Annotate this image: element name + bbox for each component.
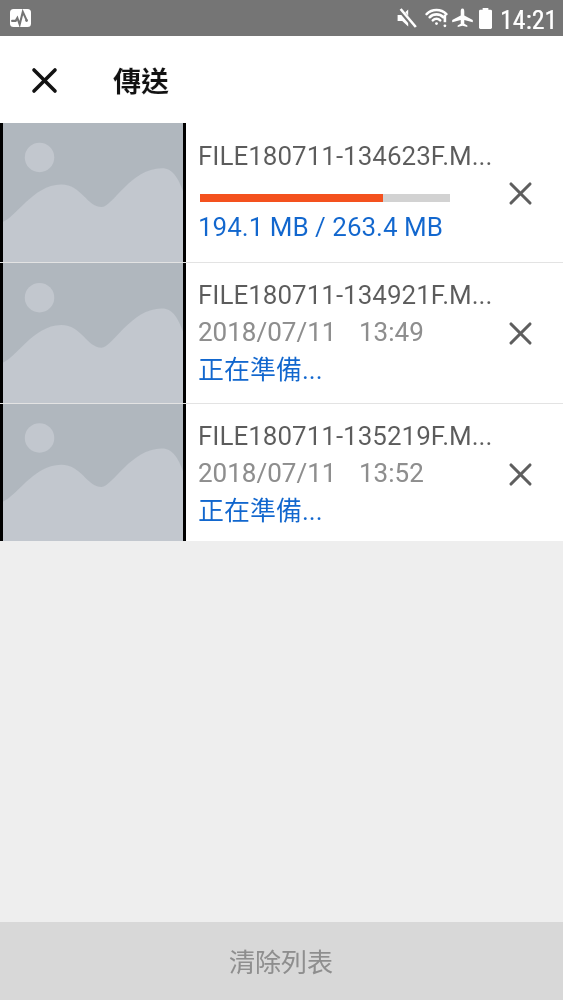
button[interactable]: Cancel transfer <box>492 305 548 361</box>
staticText: 194.1 MB / 263.4 MB <box>198 212 443 242</box>
staticText: 14:21 <box>500 5 558 35</box>
staticText: 2018/07/11 <box>198 317 337 347</box>
button[interactable]: Close <box>20 56 68 104</box>
staticText: FILE180711-135219F.M... <box>198 421 493 451</box>
button[interactable]: FILE180711-135219F.M... <box>0 404 563 541</box>
staticText: 2018/07/11 <box>198 458 337 488</box>
button[interactable]: FILE180711-134921F.M... <box>0 263 563 403</box>
staticText: 13:52 <box>359 458 424 488</box>
staticText: FILE180711-134921F.M... <box>198 280 493 310</box>
button[interactable]: 清除列表 <box>0 922 563 1000</box>
button[interactable]: Cancel transfer <box>492 165 548 221</box>
button[interactable]: Cancel transfer <box>492 446 548 502</box>
staticText: FILE180711-134623F.M... <box>198 141 493 171</box>
button[interactable]: FILE180711-134623F.M... <box>0 123 563 262</box>
staticText: 傳送 <box>113 60 170 101</box>
staticText: 正在準備... <box>198 490 323 528</box>
staticText: 13:49 <box>359 317 424 347</box>
staticText: 清除列表 <box>229 942 334 980</box>
staticText: 正在準備... <box>198 349 323 387</box>
